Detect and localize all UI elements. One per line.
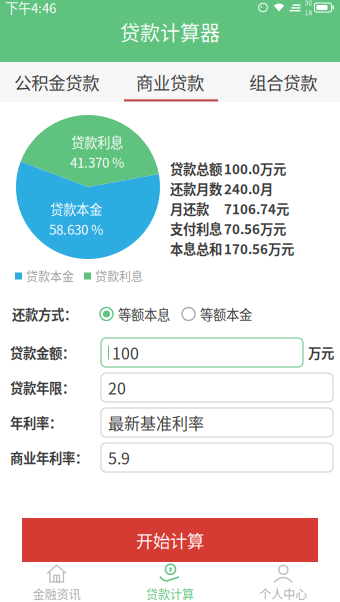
button[interactable]: 等额本息 (100, 304, 170, 324)
staticText: 贷款计算器 (120, 17, 220, 46)
button[interactable]: 金融资讯 (0, 560, 113, 602)
staticText: 20 (108, 376, 126, 399)
staticText: 7106.74元 (224, 199, 289, 218)
staticText: 公积金贷款 (14, 69, 99, 95)
staticText: 贷款金额： (10, 343, 75, 362)
staticText: 贷款利息 (95, 267, 143, 285)
staticText: 贷款利息 (71, 132, 123, 151)
staticText: 贷款计算 (146, 585, 194, 602)
staticText: 年利率： (10, 413, 62, 432)
staticText: 开始计算 (136, 527, 204, 553)
staticText: 金融资讯 (33, 585, 81, 602)
staticText: 贷款本金 (50, 199, 102, 218)
button[interactable]: 开始计算 (22, 518, 318, 562)
staticText: 等额本金 (200, 304, 252, 324)
button[interactable]: 商业贷款 (113, 63, 227, 101)
staticText: 下午4:46 (5, 0, 56, 17)
staticText: 商业年利率： (10, 448, 88, 467)
staticText: 贷款总额 (170, 159, 222, 178)
staticText: 100 (112, 341, 139, 364)
button[interactable]: 个人中心 (227, 560, 340, 602)
staticText: 本息总和 (170, 239, 222, 258)
staticText: 还款方式： (12, 304, 77, 324)
staticText: 商业贷款 (136, 69, 204, 95)
button[interactable]: 等额本金 (182, 304, 252, 324)
staticText: 100.0万元 (224, 159, 286, 178)
staticText: 月还款 (170, 199, 209, 218)
staticText: 贷款年限： (10, 378, 75, 397)
staticText: 还款月数 (170, 179, 222, 198)
staticText: 41.370 % (70, 152, 124, 172)
staticText: 等额本息 (118, 304, 170, 324)
staticText: 贷款本金 (26, 267, 74, 285)
staticText: 支付利息 (170, 219, 222, 238)
button[interactable]: 贷款计算 (113, 560, 227, 602)
staticText: 最新基准利率 (108, 411, 204, 434)
staticText: 5.9 (108, 446, 130, 469)
button[interactable]: 公积金贷款 (0, 63, 113, 101)
staticText: 240.0月 (224, 179, 273, 198)
staticText: 个人中心 (259, 585, 307, 602)
staticText: 万元 (308, 343, 334, 362)
staticText: 70.56万元 (224, 219, 286, 238)
staticText: 组合贷款 (249, 69, 317, 95)
button[interactable]: 组合贷款 (227, 63, 340, 101)
staticText: 30 18 (304, 0, 312, 17)
staticText: 170.56万元 (224, 239, 294, 258)
staticText: 58.630 % (49, 219, 103, 239)
